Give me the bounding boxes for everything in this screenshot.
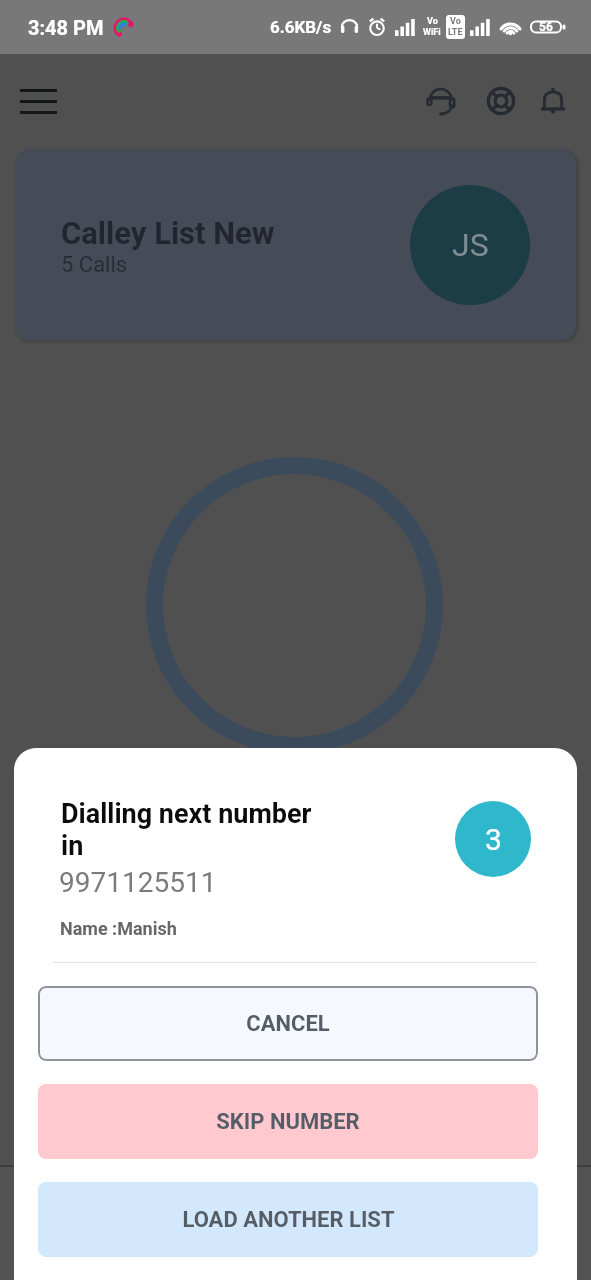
staticText: 9971125511 xyxy=(59,866,217,899)
staticText: 6.6KB/s xyxy=(270,17,332,37)
button[interactable]: Countdown 3 seconds xyxy=(455,801,531,877)
staticText: Calley List New xyxy=(61,215,275,251)
staticText: WiFi xyxy=(423,27,441,38)
staticText: 5 Calls xyxy=(61,252,128,278)
staticText: 3 xyxy=(485,822,502,857)
staticText: SKIP NUMBER xyxy=(216,1109,360,1135)
staticText: LTE xyxy=(448,27,463,38)
button[interactable]: Calley List New xyxy=(16,149,576,340)
button[interactable]: Help xyxy=(477,77,525,125)
button[interactable]: Call support xyxy=(417,77,465,125)
staticText: Vo xyxy=(427,16,438,27)
staticText: CANCEL xyxy=(246,1011,330,1037)
staticText: 3:48 PM xyxy=(28,16,104,39)
button[interactable]: Notifications xyxy=(529,77,577,125)
staticText: LOAD ANOTHER LIST xyxy=(182,1207,395,1233)
staticText: Vo xyxy=(450,16,461,27)
button[interactable]: SKIP NUMBER xyxy=(38,1084,538,1159)
button[interactable]: CANCEL xyxy=(38,986,538,1061)
button[interactable]: LOAD ANOTHER LIST xyxy=(38,1182,538,1257)
button[interactable]: Open navigation menu xyxy=(8,77,68,125)
staticText: Dialling next number in xyxy=(61,798,323,862)
staticText: JS xyxy=(452,226,489,264)
staticText: 56 xyxy=(539,20,553,34)
staticText: Name :Manish xyxy=(60,918,177,939)
